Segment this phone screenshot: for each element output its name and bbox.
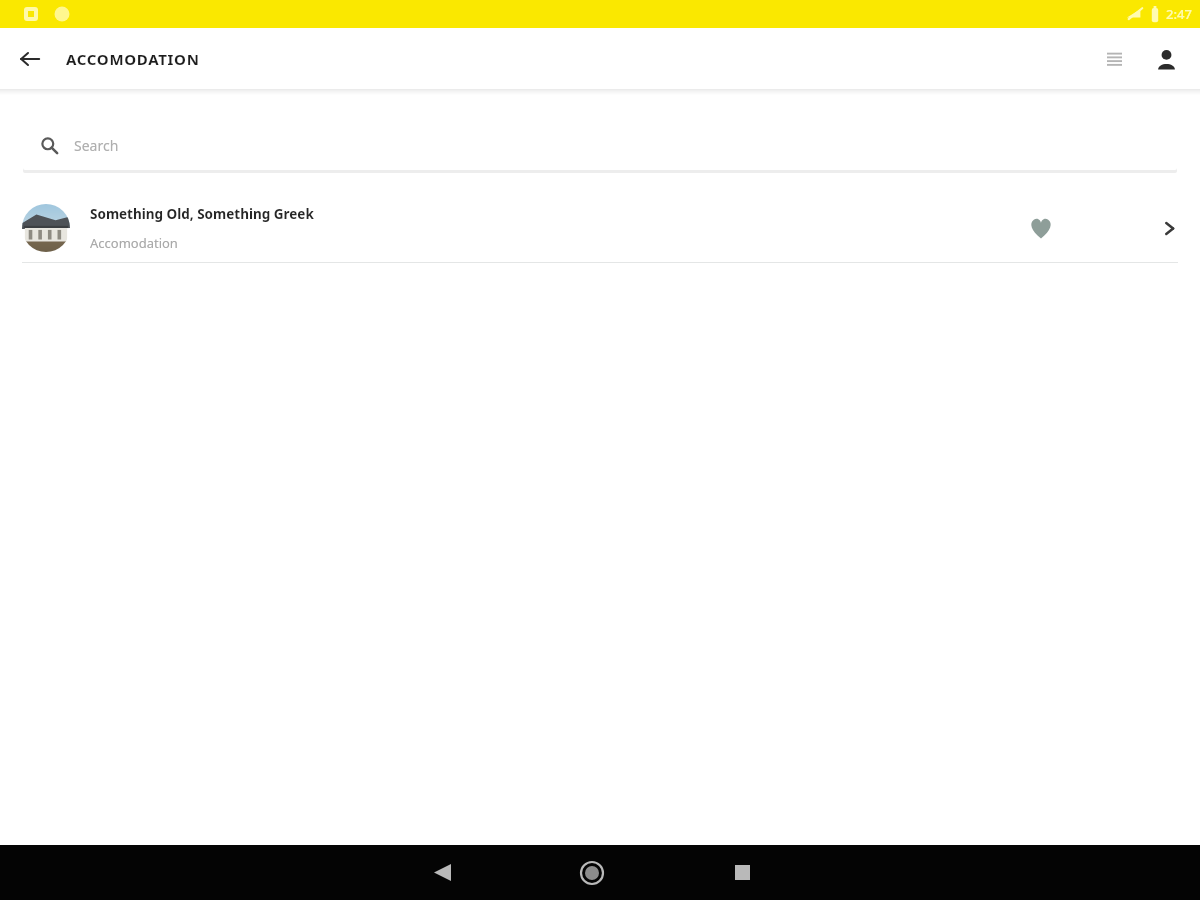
staticText: ACCOMODATION [66,49,200,69]
button[interactable]: Change view [1092,37,1136,81]
button[interactable]: Back [12,41,48,77]
button[interactable]: Favourite [1018,205,1064,251]
button[interactable]: Something Old, Something Greek [0,194,1200,262]
staticText: Search [74,136,119,155]
button[interactable]: Search [23,120,1177,170]
button[interactable]: Home [564,845,620,900]
staticText: Accomodation [90,234,178,252]
button[interactable]: Open details [1152,211,1186,245]
staticText: Something Old, Something Greek [90,205,314,223]
button[interactable]: Account [1144,37,1188,81]
staticText: 2:47 [1166,5,1192,23]
button[interactable]: Recents [714,845,770,900]
button[interactable]: Back [414,845,470,900]
